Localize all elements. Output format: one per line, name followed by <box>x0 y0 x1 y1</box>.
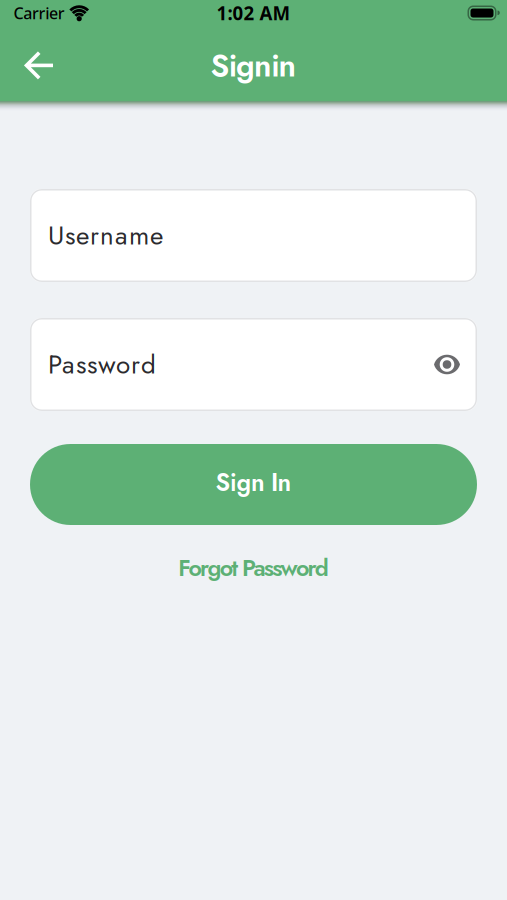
staticText: Sign In <box>215 465 291 500</box>
staticText: Username <box>48 217 163 254</box>
button[interactable]: Show password <box>426 346 468 382</box>
button[interactable]: Username <box>30 189 477 282</box>
staticText: Password <box>48 346 156 383</box>
button[interactable]: Password <box>30 318 477 411</box>
staticText: Signin <box>210 43 296 88</box>
staticText: 1:02 AM <box>216 1 290 25</box>
button[interactable]: Forgot Password <box>170 547 337 589</box>
staticText: Carrier <box>13 2 65 24</box>
button[interactable]: Sign In <box>30 444 477 525</box>
staticText: Forgot Password <box>178 551 329 585</box>
button[interactable]: Back <box>0 28 70 100</box>
